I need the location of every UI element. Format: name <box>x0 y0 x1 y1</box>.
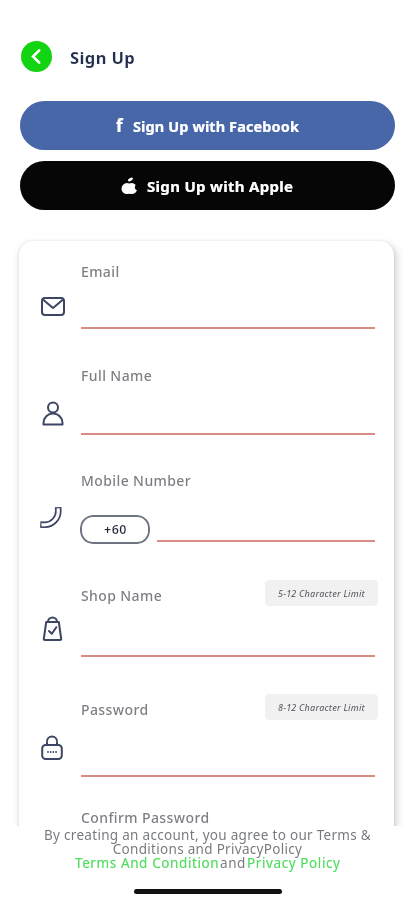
staticText: Shop Name <box>81 586 163 605</box>
button[interactable] <box>81 581 375 657</box>
staticText: 5-12 Character Limit <box>278 587 365 599</box>
staticText: 8-12 Character Limit <box>278 701 365 713</box>
button[interactable] <box>81 361 375 436</box>
staticText: f <box>116 114 123 137</box>
staticText: By creating an account, you agree to our… <box>0 826 415 844</box>
staticText: Mobile Number <box>81 471 192 490</box>
button[interactable] <box>81 695 375 777</box>
staticText: Sign Up with Facebook <box>133 116 299 136</box>
button[interactable]: Sign Up with Apple <box>20 161 395 210</box>
staticText: and <box>220 854 247 872</box>
button[interactable]: +60 <box>80 515 150 544</box>
button[interactable]: Privacy Policy <box>247 854 341 872</box>
staticText: Confirm Password <box>81 808 210 827</box>
staticText: Password <box>81 700 149 719</box>
button[interactable]: f <box>20 101 395 150</box>
button[interactable] <box>81 256 375 331</box>
staticText: Sign Up <box>70 46 136 68</box>
button[interactable] <box>21 41 52 72</box>
button[interactable]: Terms And Condition <box>75 854 220 872</box>
staticText: Conditions and PrivacyPolicy <box>0 840 415 858</box>
staticText: Full Name <box>81 366 153 385</box>
staticText: Sign Up with Apple <box>147 176 294 196</box>
staticText: +60 <box>104 521 127 538</box>
button[interactable] <box>81 466 375 543</box>
staticText: Email <box>81 262 120 281</box>
